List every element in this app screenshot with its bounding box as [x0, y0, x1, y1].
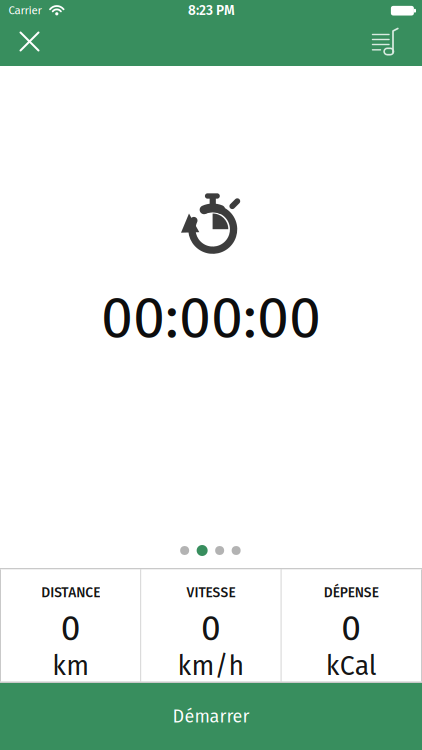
staticText: 0 [341, 607, 361, 650]
staticText: 0 [201, 607, 221, 650]
staticText: 8:23 PM [188, 2, 235, 18]
button[interactable]: Close [7, 19, 51, 63]
staticText: VITESSE [186, 584, 235, 601]
button[interactable]: Démarrer [0, 683, 422, 750]
staticText: km [52, 650, 89, 682]
staticText: Carrier [8, 3, 41, 17]
staticText: DÉPENSE [324, 584, 379, 601]
staticText: kCal [326, 650, 377, 682]
staticText: km/h [177, 650, 244, 682]
staticText: 0 [61, 607, 81, 650]
staticText: 00:00:00 [101, 284, 321, 352]
staticText: DISTANCE [41, 584, 100, 601]
staticText: Démarrer [172, 706, 249, 727]
button[interactable]: Music playlist [363, 19, 407, 63]
